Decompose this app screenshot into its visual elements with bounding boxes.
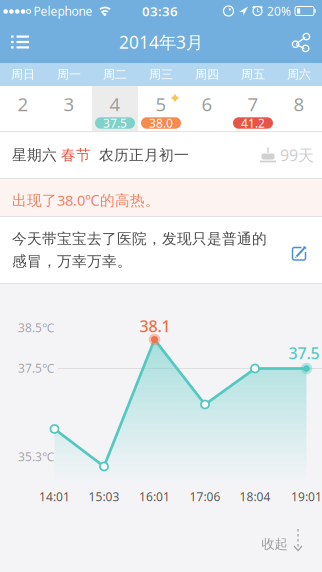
staticText: 15:03 — [88, 488, 119, 504]
staticText: 出现了38.0℃的高热。 — [12, 190, 160, 210]
staticText: 5 — [155, 92, 166, 116]
staticText: 38.1 — [139, 315, 170, 337]
staticText: 37.5 — [288, 342, 319, 364]
staticText: 19:01 — [291, 488, 322, 504]
staticText: 03:36 — [142, 2, 178, 20]
staticText: 春节 — [57, 146, 95, 164]
button[interactable]: 4 — [92, 86, 138, 131]
staticText: 14:01 — [39, 488, 70, 504]
staticText: 周三 — [149, 67, 173, 82]
staticText: 18:04 — [239, 488, 270, 504]
button[interactable]: 7 — [230, 86, 276, 131]
staticText: 周日 — [11, 67, 35, 82]
staticText: 37.5 — [103, 115, 127, 131]
staticText: Pelephone — [33, 3, 92, 19]
button[interactable] — [285, 239, 313, 267]
button[interactable]: 2 — [0, 86, 46, 131]
staticText: 农历正月初一 — [95, 146, 189, 164]
button[interactable] — [0, 25, 39, 59]
staticText: 38.5℃ — [18, 319, 54, 335]
staticText: 17:06 — [189, 488, 220, 504]
button[interactable]: 8 — [276, 86, 322, 131]
button[interactable]: 5 — [138, 86, 184, 131]
staticText: 收起 — [261, 536, 287, 552]
staticText: 2 — [17, 92, 28, 116]
staticText: 8 — [293, 92, 304, 116]
staticText: 4 — [109, 92, 120, 116]
staticText: 周五 — [241, 67, 265, 82]
staticText: 41.2 — [241, 115, 265, 131]
staticText: 37.5℃ — [18, 360, 54, 376]
staticText: 6 — [201, 92, 212, 116]
staticText: 周六 — [287, 67, 311, 82]
button[interactable]: 收起 — [255, 525, 308, 563]
staticText: 7 — [247, 92, 258, 116]
staticText: 感冒，万幸万幸。 — [12, 252, 132, 270]
button[interactable] — [282, 23, 320, 61]
staticText: 星期六 — [12, 146, 57, 164]
staticText: 周四 — [195, 67, 219, 82]
staticText: 周二 — [103, 67, 127, 82]
staticText: 35.3℃ — [18, 448, 54, 464]
staticText: 99天 — [276, 144, 314, 166]
staticText: 38.0 — [149, 115, 173, 131]
staticText: 20% — [267, 3, 291, 19]
staticText: 3 — [63, 92, 74, 116]
staticText: 今天带宝宝去了医院，发现只是普通的 — [12, 230, 267, 248]
button[interactable]: 3 — [46, 86, 92, 131]
staticText: 周一 — [57, 67, 81, 82]
button[interactable]: 6 — [184, 86, 230, 131]
staticText: 16:01 — [139, 488, 170, 504]
staticText: 2014年3月 — [119, 30, 203, 53]
